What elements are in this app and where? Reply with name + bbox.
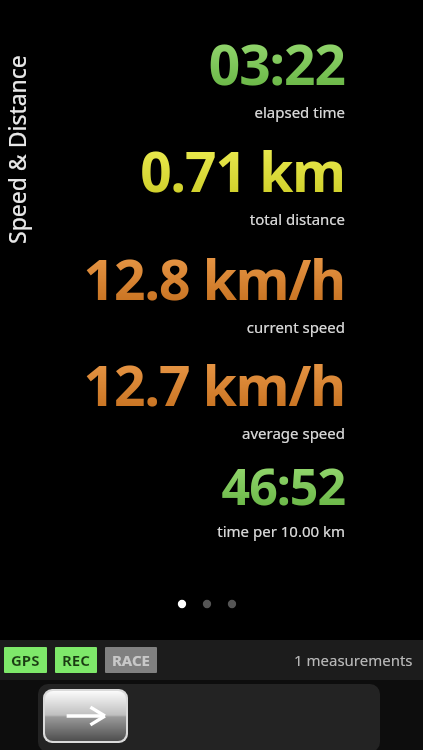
button[interactable]: REC bbox=[55, 647, 97, 673]
staticText: 1 measurements bbox=[294, 650, 413, 670]
staticText: REC bbox=[62, 650, 90, 670]
staticText: 12.7 km/h bbox=[83, 347, 345, 422]
staticText: 03:22 bbox=[208, 26, 345, 101]
button[interactable]: RACE bbox=[105, 647, 157, 673]
staticText: Speed & Distance bbox=[1, 55, 32, 244]
staticText: average speed bbox=[242, 423, 345, 443]
button[interactable]: Next bbox=[45, 691, 126, 741]
staticText: 12.8 km/h bbox=[83, 241, 345, 316]
staticText: total distance bbox=[249, 209, 345, 229]
button[interactable]: 0.71 km bbox=[0, 133, 423, 241]
staticText: elapsed time bbox=[254, 102, 345, 122]
staticText: GPS bbox=[11, 650, 40, 670]
button[interactable]: 46:52 bbox=[0, 452, 423, 552]
staticText: time per 10.00 km bbox=[217, 521, 345, 541]
staticText: 46:52 bbox=[221, 452, 345, 520]
button[interactable]: 03:22 bbox=[0, 26, 423, 133]
staticText: current speed bbox=[246, 317, 345, 337]
button[interactable]: GPS bbox=[4, 647, 47, 673]
button[interactable]: 12.7 km/h bbox=[0, 347, 423, 452]
staticText: 0.71 km bbox=[140, 133, 345, 208]
button[interactable]: 12.8 km/h bbox=[0, 241, 423, 347]
staticText: RACE bbox=[112, 650, 150, 670]
